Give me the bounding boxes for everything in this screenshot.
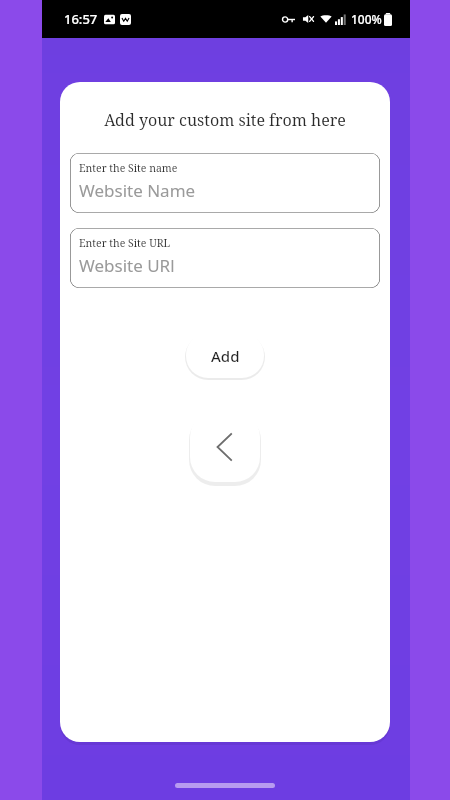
button[interactable]: Back (190, 412, 260, 482)
button[interactable]: Enter the Site name (70, 153, 380, 213)
staticText: Add your custom site from here (104, 109, 346, 131)
button[interactable]: Add (186, 333, 264, 378)
staticText: 100% (351, 11, 382, 27)
staticText: Add (211, 346, 240, 366)
staticText: Enter the Site URL (79, 236, 171, 250)
staticText: Enter the Site name (79, 161, 178, 175)
staticText: 16:57 (64, 10, 98, 28)
staticText: Website URl (79, 254, 175, 277)
staticText: Website Name (79, 179, 196, 202)
button[interactable]: Enter the Site URL (70, 228, 380, 288)
